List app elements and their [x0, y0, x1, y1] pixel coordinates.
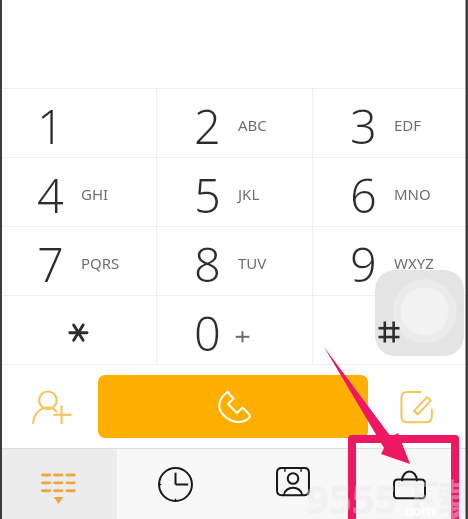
staticText: 9555下载: [306, 471, 468, 519]
button[interactable]: Add contact: [25, 379, 81, 442]
button[interactable]: New message: [398, 377, 440, 440]
button[interactable]: Call: [98, 375, 368, 438]
staticText: 6: [350, 163, 377, 227]
button[interactable]: 4: [0, 158, 156, 226]
staticText: 0: [194, 301, 221, 365]
button[interactable]: 7: [0, 227, 156, 295]
button[interactable]: 5: [157, 158, 312, 226]
staticText: WXYZ: [394, 253, 434, 273]
staticText: 9: [350, 232, 377, 296]
button[interactable]: 8: [157, 227, 312, 295]
staticText: GHI: [81, 184, 109, 204]
staticText: 4: [37, 163, 64, 227]
button[interactable]: 2: [157, 89, 312, 157]
button[interactable]: 0: [157, 296, 312, 364]
button[interactable]: [313, 296, 468, 364]
button[interactable]: [0, 296, 156, 364]
staticText: .com: [400, 500, 436, 519]
button[interactable]: 6: [313, 158, 468, 226]
button[interactable]: Recents: [117, 449, 234, 519]
button[interactable]: Keypad: [0, 449, 117, 519]
button[interactable]: 1: [0, 89, 156, 157]
staticText: JKL: [238, 184, 260, 204]
staticText: 7: [37, 232, 64, 296]
button[interactable]: 9: [313, 227, 468, 295]
button[interactable]: More: [351, 449, 468, 519]
staticText: 5: [194, 163, 221, 227]
staticText: MNO: [394, 184, 431, 204]
staticText: PQRS: [81, 253, 120, 273]
button[interactable]: 3: [313, 89, 468, 157]
staticText: TUV: [238, 253, 267, 273]
button[interactable]: Contacts: [234, 449, 351, 519]
staticText: 2: [194, 94, 221, 158]
staticText: 3: [350, 94, 377, 158]
staticText: 1: [37, 94, 64, 158]
staticText: 8: [194, 232, 221, 296]
staticText: ABC: [238, 115, 267, 135]
staticText: EDF: [394, 115, 422, 135]
